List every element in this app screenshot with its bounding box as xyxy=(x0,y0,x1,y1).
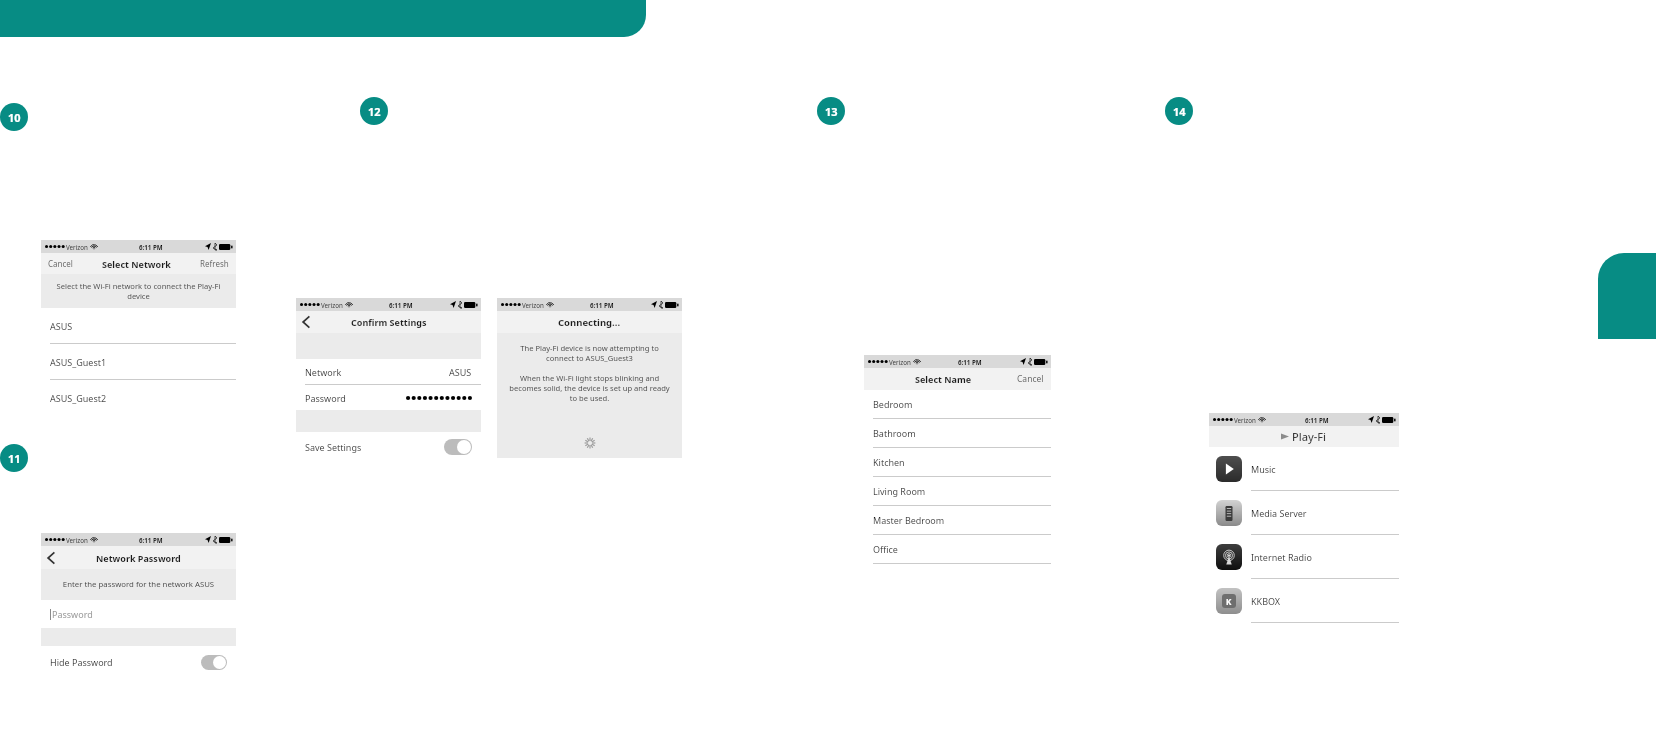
staticText: When the Wi-Fi light stops blinking and … xyxy=(505,373,674,403)
staticText: KKBOX xyxy=(1251,595,1281,607)
button[interactable]: Back xyxy=(302,316,311,328)
staticText: 6:11 PM xyxy=(1305,416,1329,424)
staticText: 6:11 PM xyxy=(389,301,413,309)
staticText: ASUS xyxy=(449,366,472,378)
staticText: K xyxy=(1226,596,1232,607)
button[interactable]: Toggle switch xyxy=(201,655,227,670)
staticText: Cancel xyxy=(48,258,73,269)
button[interactable]: Back xyxy=(47,552,56,564)
button[interactable]: 13 xyxy=(817,97,845,125)
staticText: 13 xyxy=(825,104,838,119)
staticText: Music xyxy=(1251,463,1276,475)
staticText: 14 xyxy=(1173,104,1186,119)
staticText: 11 xyxy=(8,451,21,466)
staticText: Verizon xyxy=(66,243,88,251)
button[interactable]: ASUS_Guest2 xyxy=(41,380,236,415)
staticText: Network xyxy=(305,366,342,378)
button[interactable]: ASUS_Guest1 xyxy=(41,344,236,380)
button[interactable]: Network xyxy=(305,359,472,384)
staticText: Connecting... xyxy=(558,316,621,329)
staticText: Living Room xyxy=(873,485,926,497)
button[interactable]: 12 xyxy=(360,97,388,125)
button[interactable]: Master Bedroom xyxy=(864,506,1051,535)
staticText: Bathroom xyxy=(873,427,916,439)
staticText: ASUS xyxy=(50,320,73,332)
staticText: Bedroom xyxy=(873,398,913,410)
staticText: ASUS_Guest1 xyxy=(50,356,107,368)
staticText: Network Password xyxy=(96,552,181,564)
button[interactable]: Password xyxy=(50,600,236,628)
button[interactable]: 10 xyxy=(0,103,28,131)
button[interactable]: ASUS xyxy=(41,308,236,344)
staticText: Password xyxy=(52,608,93,620)
staticText: Select Name xyxy=(915,373,972,385)
staticText: Play-Fi xyxy=(1292,429,1327,444)
staticText: Verizon xyxy=(522,301,544,309)
button[interactable]: 11 xyxy=(0,444,28,472)
staticText: Office xyxy=(873,543,898,555)
staticText: Kitchen xyxy=(873,456,905,468)
staticText: Select the Wi-Fi network to connect the … xyxy=(51,281,226,301)
staticText: Media Server xyxy=(1251,507,1307,519)
staticText: Confirm Settings xyxy=(351,316,427,328)
staticText: Refresh xyxy=(200,258,229,269)
button[interactable]: Internet Radio xyxy=(1216,535,1399,579)
button[interactable]: Password xyxy=(305,385,472,410)
button[interactable]: Cancel xyxy=(48,258,73,269)
button[interactable]: Music xyxy=(1216,447,1399,491)
staticText: Hide Password xyxy=(50,656,113,668)
button[interactable]: K xyxy=(1216,579,1399,623)
button[interactable]: Toggle switch xyxy=(444,439,472,455)
staticText: Verizon xyxy=(321,301,343,309)
staticText: Master Bedroom xyxy=(873,514,945,526)
staticText: Verizon xyxy=(66,536,88,544)
button[interactable]: Living Room xyxy=(864,477,1051,506)
staticText: 6:11 PM xyxy=(958,358,982,366)
staticText: Verizon xyxy=(1234,416,1256,424)
staticText: Select Network xyxy=(102,258,171,270)
button[interactable]: Kitchen xyxy=(864,448,1051,477)
button[interactable]: Refresh xyxy=(200,258,229,269)
staticText: 12 xyxy=(368,104,381,119)
staticText: 6:11 PM xyxy=(139,536,163,544)
staticText: 6:11 PM xyxy=(139,243,163,251)
staticText: Internet Radio xyxy=(1251,551,1312,563)
staticText: ASUS_Guest2 xyxy=(50,392,107,404)
staticText: Enter the password for the network ASUS xyxy=(47,579,230,590)
button[interactable]: Save Settings xyxy=(305,432,472,462)
staticText: Verizon xyxy=(889,358,911,366)
button[interactable]: Bedroom xyxy=(864,390,1051,419)
staticText: Password xyxy=(305,392,346,404)
staticText: Save Settings xyxy=(305,441,362,453)
staticText: 6:11 PM xyxy=(590,301,614,309)
button[interactable]: Bathroom xyxy=(864,419,1051,448)
staticText: 10 xyxy=(8,110,21,125)
button[interactable]: Office xyxy=(864,535,1051,564)
staticText: Cancel xyxy=(1017,373,1044,385)
staticText: The Play-Fi device is now attempting to … xyxy=(507,343,672,363)
button[interactable]: Media Server xyxy=(1216,491,1399,535)
button[interactable]: Hide Password xyxy=(50,646,227,678)
button[interactable]: 14 xyxy=(1165,97,1193,125)
button[interactable]: Cancel xyxy=(1017,373,1044,385)
